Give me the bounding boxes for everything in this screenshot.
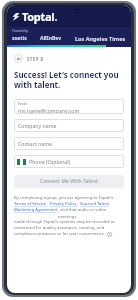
staticText: my.name@company.com (18, 107, 80, 114)
staticText: Success! Let's connect you with talent. (14, 69, 124, 91)
button[interactable]: Sourced Talent (80, 201, 109, 207)
staticText: Phone (Optional) (29, 158, 71, 165)
staticText: zoetis (12, 35, 27, 42)
button[interactable]: Contact name (14, 137, 124, 150)
staticText: Company name (18, 122, 57, 129)
button[interactable]: Back (14, 54, 44, 63)
button[interactable]: Privacy Policy (50, 201, 77, 207)
staticText: , (77, 201, 80, 207)
button[interactable]: Company name (14, 119, 124, 132)
button[interactable]: Marketing Agreement (14, 207, 58, 213)
button[interactable]: Terms of Service (14, 201, 47, 207)
staticText: Trusted by (12, 29, 28, 33)
staticText: Email (18, 101, 28, 106)
staticText: Contact name (18, 140, 53, 147)
staticText: STEP 8 (27, 56, 44, 62)
staticText: Connect Me With Talent (40, 178, 98, 185)
staticText: compliance purposes or for your convenie… (14, 231, 107, 237)
staticText: made through Toptal's systems may be rec… (14, 219, 116, 225)
button[interactable]: More info (107, 232, 112, 237)
staticText: Los Angeles Times (75, 35, 126, 42)
staticText: By completing signup, you are agreeing t… (14, 195, 114, 201)
button[interactable]: Connect Me With Talent (14, 175, 124, 188)
other: Country code (17, 159, 26, 165)
staticText: ABInBev (40, 35, 62, 42)
staticText: , and that audio or video meetings (58, 207, 124, 219)
staticText: monitored for quality assurance, trainin… (14, 225, 105, 231)
staticText: Toptal (22, 9, 55, 24)
button[interactable]: Email (14, 99, 124, 114)
staticText: , (47, 201, 50, 207)
button[interactable]: Country code (14, 155, 124, 168)
other: Back (14, 54, 23, 63)
